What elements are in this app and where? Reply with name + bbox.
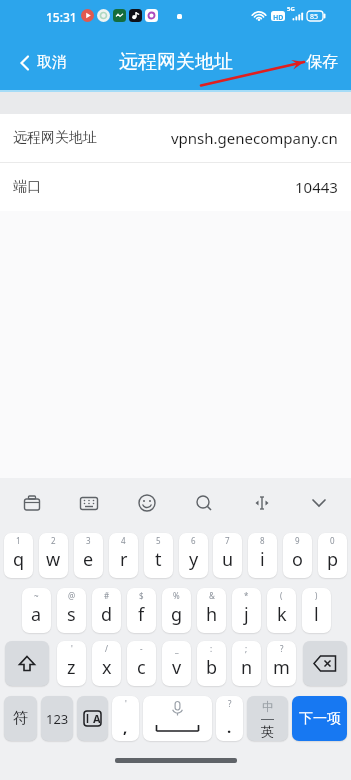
staticText: d	[101, 602, 113, 627]
staticText: e	[83, 547, 94, 572]
staticText: 15:31	[46, 9, 77, 25]
staticText: v	[172, 655, 182, 680]
button[interactable]	[303, 641, 347, 686]
staticText: '	[125, 698, 127, 709]
button[interactable]: 3	[74, 533, 103, 578]
staticText: 6	[191, 535, 196, 546]
staticText: n	[241, 655, 253, 680]
staticText: q	[13, 547, 25, 572]
staticText: 8	[260, 535, 265, 546]
staticText: ,	[123, 717, 128, 737]
staticText: 85	[310, 12, 319, 22]
staticText: 英	[261, 723, 274, 739]
button[interactable]: 7	[213, 533, 242, 578]
button[interactable]: $	[127, 588, 156, 633]
button[interactable]: 9	[283, 533, 312, 578]
button[interactable]	[307, 491, 331, 515]
staticText: (	[280, 590, 283, 601]
button[interactable]: @	[57, 588, 86, 633]
button[interactable]: 符	[4, 696, 37, 741]
staticText: /	[105, 643, 108, 654]
staticText: 取消	[37, 53, 67, 72]
staticText: 5	[156, 535, 161, 546]
button[interactable]: :	[197, 641, 226, 686]
staticText: c	[137, 655, 146, 680]
button[interactable]	[192, 491, 216, 515]
staticText: 123	[46, 710, 69, 728]
button[interactable]: ~	[22, 588, 51, 633]
staticText: z	[67, 655, 76, 680]
staticText: '	[71, 643, 73, 654]
staticText: 7	[225, 535, 230, 546]
staticText: 保存	[306, 52, 338, 72]
button[interactable]: 123	[41, 696, 73, 741]
button[interactable]: 8	[248, 533, 277, 578]
button[interactable]: '	[57, 641, 86, 686]
button[interactable]: '	[112, 696, 139, 741]
staticText: i	[260, 547, 265, 572]
staticText: m	[273, 655, 290, 680]
button[interactable]: 取消	[0, 47, 75, 78]
button[interactable]: *	[232, 588, 261, 633]
button[interactable]: )	[302, 588, 331, 633]
button[interactable]: (	[267, 588, 296, 633]
button[interactable]	[135, 491, 159, 515]
button[interactable]: 下一项	[292, 696, 347, 741]
button[interactable]	[250, 491, 274, 515]
staticText: #	[104, 590, 110, 601]
staticText: t	[155, 547, 162, 572]
button[interactable]: %	[162, 588, 191, 633]
button[interactable]	[77, 491, 101, 515]
staticText: 中	[262, 699, 274, 714]
staticText: a	[31, 602, 42, 627]
button[interactable]: 6	[179, 533, 208, 578]
staticText: f	[138, 602, 145, 627]
button[interactable]: 5	[144, 533, 173, 578]
staticText: ?	[280, 643, 284, 654]
staticText: y	[189, 547, 199, 572]
staticText: w	[46, 547, 61, 572]
button[interactable]: &	[197, 588, 226, 633]
button[interactable]: ?	[267, 641, 296, 686]
staticText: _	[175, 643, 179, 654]
button[interactable]: 2	[39, 533, 68, 578]
button[interactable]: 保存	[306, 44, 351, 80]
staticText: 2	[51, 535, 56, 546]
button[interactable]: /	[92, 641, 121, 686]
staticText: 远程网关地址	[119, 50, 233, 74]
staticText: HD	[273, 13, 284, 23]
staticText: ?	[228, 698, 232, 709]
button[interactable]: -	[127, 641, 156, 686]
button[interactable]: 端口	[0, 163, 351, 211]
staticText: k	[277, 602, 287, 627]
button[interactable]: ?	[216, 696, 243, 741]
staticText: -	[140, 643, 143, 654]
staticText: b	[206, 655, 218, 680]
staticText: 符	[13, 709, 28, 728]
button[interactable]	[5, 641, 49, 686]
staticText: r	[120, 547, 128, 572]
staticText: 5G	[287, 5, 295, 13]
staticText: :	[210, 643, 213, 654]
button[interactable]: 4	[109, 533, 138, 578]
staticText: g	[171, 602, 183, 627]
staticText: 远程网关地址	[13, 129, 97, 147]
button[interactable]: 0	[318, 533, 347, 578]
button[interactable]: _	[162, 641, 191, 686]
staticText: .	[227, 717, 232, 737]
staticText: A	[93, 711, 101, 726]
button[interactable]: 远程网关地址	[0, 114, 351, 162]
button[interactable]	[20, 491, 44, 515]
staticText: 4	[121, 535, 126, 546]
staticText: 端口	[13, 178, 41, 196]
button[interactable]: #	[92, 588, 121, 633]
staticText: x	[102, 655, 112, 680]
button[interactable]: ;	[232, 641, 261, 686]
staticText: %	[173, 590, 180, 601]
staticText: 1	[16, 535, 21, 546]
button[interactable]: A	[77, 696, 108, 741]
button[interactable]	[143, 696, 212, 741]
button[interactable]: 中	[247, 696, 288, 741]
button[interactable]: 1	[4, 533, 33, 578]
staticText: 3	[86, 535, 91, 546]
